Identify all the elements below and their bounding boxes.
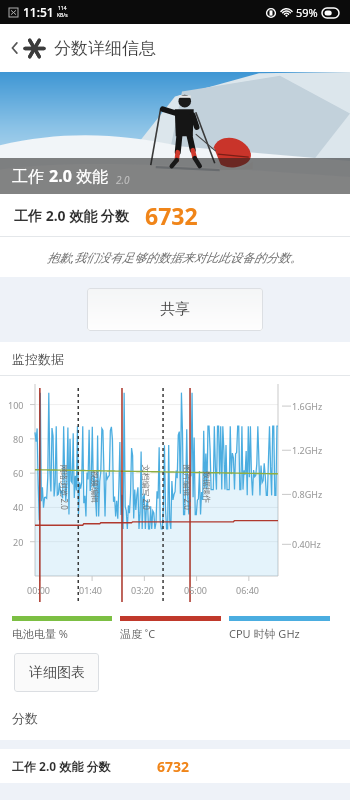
staticText: 视频编辑	[90, 471, 100, 503]
staticText: 1.6GHz	[292, 400, 323, 412]
staticText: 2.0	[49, 165, 72, 187]
staticText: 工作 2.0 效能 分数	[12, 758, 111, 774]
staticText: 11:51	[23, 4, 54, 20]
staticText: 00:00	[27, 584, 51, 596]
staticText: 60	[13, 467, 24, 479]
staticText: 温度 ˚C	[120, 626, 156, 641]
staticText: 05:00	[184, 584, 208, 596]
staticText: 数据操作	[202, 471, 212, 503]
staticText: 2.0	[116, 173, 130, 187]
staticText: 工作 2.0 效能 分数	[14, 206, 129, 225]
staticText: 0.8GHz	[292, 488, 323, 500]
staticText: 6732	[157, 757, 190, 776]
staticText: 20	[13, 536, 24, 548]
staticText: 01:40	[79, 584, 103, 596]
staticText: 网络浏览 2.0	[58, 464, 69, 510]
button[interactable]: 详细图表	[14, 653, 99, 692]
staticText: 6732	[145, 200, 198, 231]
staticText: 图片编辑 2.0	[181, 464, 192, 510]
staticText: 分数详细信息	[54, 38, 156, 59]
staticText: 1.2GHz	[292, 444, 323, 456]
staticText: 80	[13, 433, 24, 445]
staticText: 100	[8, 399, 24, 411]
staticText: 40	[13, 501, 24, 513]
staticText: 抱歉,我们没有足够的数据来对比此设备的分数。	[47, 249, 303, 265]
staticText: 06:40	[236, 584, 260, 596]
staticText: 详细图表	[29, 664, 85, 682]
staticText: KB/s	[57, 12, 68, 19]
staticText: 电池电量 %	[12, 626, 69, 641]
staticText: 文档编写 2.0	[140, 464, 151, 510]
staticText: 监控数据	[12, 351, 64, 367]
staticText: 效能	[72, 165, 109, 187]
staticText: 工作	[12, 165, 49, 187]
staticText: 114	[58, 5, 67, 12]
button[interactable]: Back	[0, 24, 350, 72]
button[interactable]: 共享	[87, 288, 263, 331]
other: Back	[7, 40, 23, 56]
button[interactable]: 工作 2.0 效能 分数	[0, 749, 350, 783]
staticText: CPU 时钟 GHz	[229, 626, 300, 641]
staticText: 分数	[12, 710, 38, 726]
staticText: 03:20	[131, 584, 155, 596]
staticText: 0.40Hz	[292, 538, 321, 550]
staticText: 共享	[160, 300, 190, 319]
staticText: 59%	[296, 5, 318, 20]
